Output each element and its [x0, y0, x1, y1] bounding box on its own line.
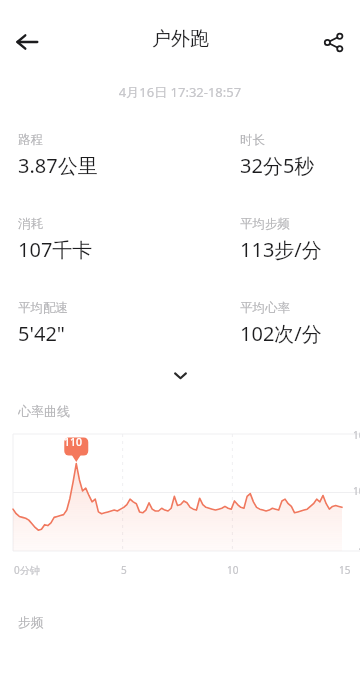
staticText: 15	[339, 563, 351, 577]
staticText: 消耗	[18, 216, 43, 232]
staticText: 心率曲线	[18, 403, 70, 419]
staticText: 时长	[240, 132, 265, 148]
staticText: 平均配速	[18, 300, 68, 316]
staticText: 户外跑	[152, 27, 209, 51]
staticText: 3.87公里	[18, 152, 98, 179]
staticText: 107千卡	[18, 236, 93, 263]
staticText: 10	[227, 563, 239, 577]
staticText: 10	[353, 484, 360, 498]
button[interactable]: Share	[313, 22, 353, 62]
staticText: 5'42"	[18, 320, 65, 347]
staticText: 32分5秒	[240, 152, 315, 179]
staticText: 步频	[18, 614, 44, 630]
button[interactable]: Back	[7, 22, 47, 62]
button[interactable]: Expand details	[161, 356, 199, 394]
staticText: 4	[359, 541, 360, 555]
staticText: 0分钟	[14, 563, 40, 577]
staticText: 平均步频	[240, 216, 290, 232]
staticText: 路程	[18, 132, 43, 148]
staticText: 16	[353, 428, 360, 442]
staticText: 平均心率	[240, 300, 290, 316]
staticText: 4月16日 17:32-18:57	[0, 83, 360, 101]
staticText: 5	[121, 563, 127, 577]
staticText: 110	[64, 435, 83, 449]
staticText: 113步/分	[240, 236, 322, 263]
staticText: 102次/分	[240, 320, 322, 347]
